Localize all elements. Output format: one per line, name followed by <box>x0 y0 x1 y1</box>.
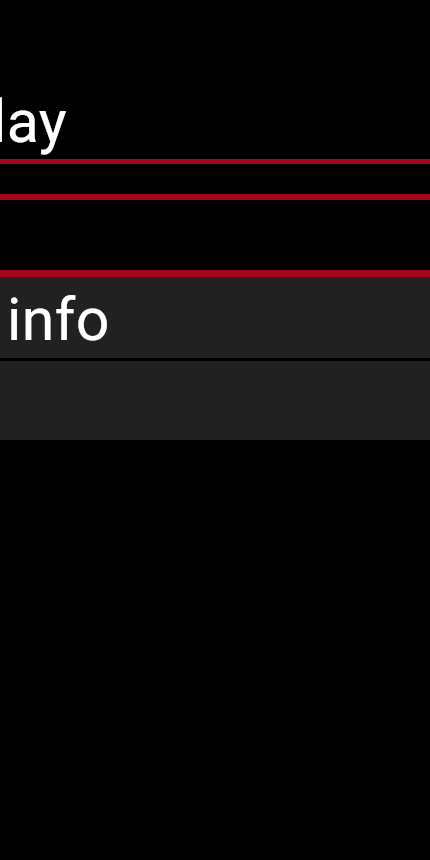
staticText: info <box>7 285 110 354</box>
button[interactable]: info <box>0 277 430 358</box>
staticText: lay <box>0 87 68 156</box>
button[interactable]: Today <box>0 84 430 154</box>
